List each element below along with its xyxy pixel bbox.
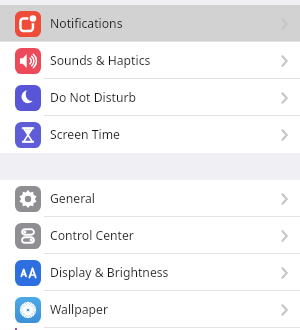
button[interactable]: Sounds & Haptics <box>0 42 300 79</box>
staticText: General <box>50 190 95 207</box>
button[interactable]: Display & Brightness <box>0 254 300 291</box>
staticText: Control Center <box>50 227 134 244</box>
button[interactable]: Wallpaper <box>0 291 300 328</box>
staticText: Sounds & Haptics <box>50 52 151 69</box>
button[interactable]: Control Center <box>0 217 300 254</box>
button[interactable]: Notifications <box>0 5 300 42</box>
staticText: Notifications <box>50 15 123 32</box>
button[interactable]: Screen Time <box>0 116 300 153</box>
staticText: Display & Brightness <box>50 264 169 281</box>
button[interactable]: Siri & Search <box>0 328 300 330</box>
staticText: Screen Time <box>50 126 120 143</box>
staticText: Wallpaper <box>50 301 108 318</box>
button[interactable]: Do Not Disturb <box>0 79 300 116</box>
button[interactable]: General <box>0 180 300 217</box>
staticText: Do Not Disturb <box>50 89 136 106</box>
